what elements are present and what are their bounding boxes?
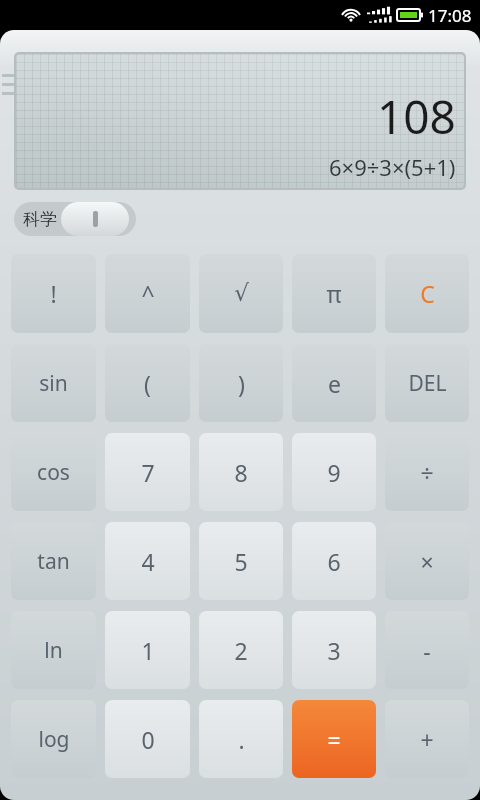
staticText: e [328,368,341,399]
button[interactable]: cos [11,433,96,513]
staticText: 3 [327,635,341,666]
staticText: - [423,635,431,666]
button[interactable]: 7 [105,433,190,513]
button[interactable]: C [385,254,469,335]
staticText: ÷ [420,457,434,488]
staticText: ln [44,636,63,665]
button[interactable]: 5 [199,522,283,602]
button[interactable]: ln [11,611,96,691]
button[interactable]: 4 [105,522,190,602]
staticText: 17:08 [428,4,472,27]
button[interactable]: 8 [199,433,283,513]
staticText: ! [50,278,57,309]
button[interactable]: × [385,522,469,602]
button[interactable]: 9 [292,433,376,513]
button[interactable]: 0 [105,700,190,780]
button[interactable]: 2 [199,611,283,691]
button[interactable]: sin [11,344,96,424]
button[interactable]: - [385,611,469,691]
staticText: tan [37,547,70,576]
button[interactable]: e [292,344,376,424]
button[interactable]: √ [199,254,283,335]
button[interactable]: tan [11,522,96,602]
staticText: ^ [141,278,155,309]
staticText: 6×9÷3×(5+1) [329,152,456,182]
staticText: + [420,724,434,755]
staticText: π [326,278,342,309]
staticText: = [327,724,341,755]
button[interactable]: ÷ [385,433,469,513]
staticText: 5 [234,546,248,577]
button[interactable]: π [292,254,376,335]
button[interactable]: 6 [292,522,376,602]
button[interactable]: = [292,700,376,780]
button[interactable]: ( [105,344,190,424]
button[interactable]: 3 [292,611,376,691]
button[interactable]: 科学 [14,202,136,236]
staticText: cos [37,458,70,487]
button[interactable]: . [199,700,283,780]
button[interactable]: ! [11,254,96,335]
staticText: √ [234,280,249,307]
staticText: 7 [141,457,155,488]
staticText: 8 [234,457,248,488]
button[interactable]: 1 [105,611,190,691]
staticText: 0 [141,724,155,755]
staticText: 1 [141,635,155,666]
staticText: C [420,278,435,309]
staticText: 2 [234,635,248,666]
staticText: ( [144,368,151,399]
button[interactable]: log [11,700,96,780]
staticText: log [38,725,70,754]
staticText: DEL [408,369,447,398]
staticText: 4 [141,546,155,577]
staticText: . [238,724,245,755]
staticText: ) [238,368,245,399]
staticText: 6 [327,546,341,577]
staticText: 9 [327,457,341,488]
staticText: sin [39,369,68,398]
staticText: 科学 [23,209,57,230]
button[interactable]: ^ [105,254,190,335]
button[interactable]: + [385,700,469,780]
button[interactable]: ) [199,344,283,424]
button[interactable]: DEL [385,344,469,424]
staticText: × [420,546,434,577]
staticText: 108 [377,85,456,148]
